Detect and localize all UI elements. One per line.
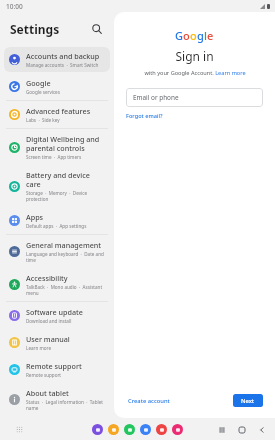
staticText: Email or phone — [133, 93, 179, 102]
staticText: Software update — [26, 307, 83, 317]
staticText: Google services — [26, 89, 60, 95]
staticText: G — [175, 28, 183, 43]
staticText: Forgot email? — [126, 112, 163, 120]
staticText: Default apps · App settings — [26, 223, 87, 229]
button[interactable]: Battery and device care — [4, 166, 110, 206]
button[interactable]: Email or phone — [126, 88, 263, 107]
button[interactable]: Apps — [4, 208, 110, 233]
button[interactable]: Remote support — [4, 357, 110, 382]
staticText: User manual — [26, 334, 70, 344]
staticText: Status · Legal information · Tablet name — [26, 399, 106, 411]
staticText: Manage accounts · Smart Switch — [26, 62, 99, 68]
staticText: o — [183, 28, 190, 43]
staticText: Storage · Memory · Device protection — [26, 190, 106, 202]
button[interactable]: App 0 — [92, 424, 103, 435]
staticText: with your Google Account. Learn more — [144, 69, 246, 77]
button[interactable]: Recents — [216, 424, 227, 435]
staticText: Sign in — [175, 48, 214, 64]
staticText: Language and keyboard · Date and time — [26, 251, 106, 263]
button[interactable]: Next — [233, 394, 263, 407]
button[interactable]: Back — [256, 424, 267, 435]
button[interactable]: App 5 — [172, 424, 183, 435]
staticText: Download and install — [26, 318, 72, 324]
staticText: l — [204, 28, 207, 43]
button[interactable]: About tablet — [4, 384, 110, 415]
staticText: Remote support — [26, 372, 61, 378]
staticText: Remote support — [26, 361, 82, 371]
button[interactable]: Forgot email? — [126, 112, 163, 120]
button[interactable]: Google — [4, 74, 110, 99]
button[interactable]: App 3 — [140, 424, 151, 435]
button[interactable]: Advanced features — [4, 102, 110, 127]
button[interactable]: Create account — [126, 395, 172, 407]
button[interactable]: Digital Wellbeing and parental controls — [4, 130, 110, 164]
staticText: Learn more — [26, 345, 51, 351]
button[interactable]: Accounts and backup — [4, 47, 110, 72]
button[interactable]: Accessibility — [4, 269, 110, 300]
button[interactable]: Home — [236, 424, 247, 435]
staticText: Accounts and backup — [26, 51, 100, 61]
button[interactable]: User manual — [4, 330, 110, 355]
button[interactable]: App 4 — [156, 424, 167, 435]
staticText: Next — [241, 397, 255, 405]
staticText: Labs · Side key — [26, 117, 60, 123]
button[interactable]: Software update — [4, 303, 110, 328]
staticText: Battery and device care — [26, 170, 106, 189]
button[interactable]: Search settings — [88, 20, 106, 38]
staticText: Create account — [128, 397, 170, 405]
button[interactable]: All apps — [13, 423, 25, 435]
staticText: g — [197, 28, 204, 43]
staticText: Advanced features — [26, 106, 91, 116]
staticText: Google — [26, 78, 51, 88]
staticText: Accessibility — [26, 273, 68, 283]
staticText: About tablet — [26, 388, 69, 398]
staticText: o — [190, 28, 197, 43]
staticText: Settings — [10, 21, 88, 37]
staticText: Digital Wellbeing and parental controls — [26, 134, 106, 153]
button[interactable]: App 2 — [124, 424, 135, 435]
staticText: Screen time · App timers — [26, 154, 82, 160]
button[interactable]: App 1 — [108, 424, 119, 435]
staticText: General management — [26, 240, 102, 250]
staticText: 10:00 — [6, 2, 23, 11]
staticText: Apps — [26, 212, 44, 222]
staticText: e — [207, 28, 214, 43]
staticText: TalkBack · Mono audio · Assistant menu — [26, 284, 106, 296]
button[interactable]: General management — [4, 236, 110, 267]
